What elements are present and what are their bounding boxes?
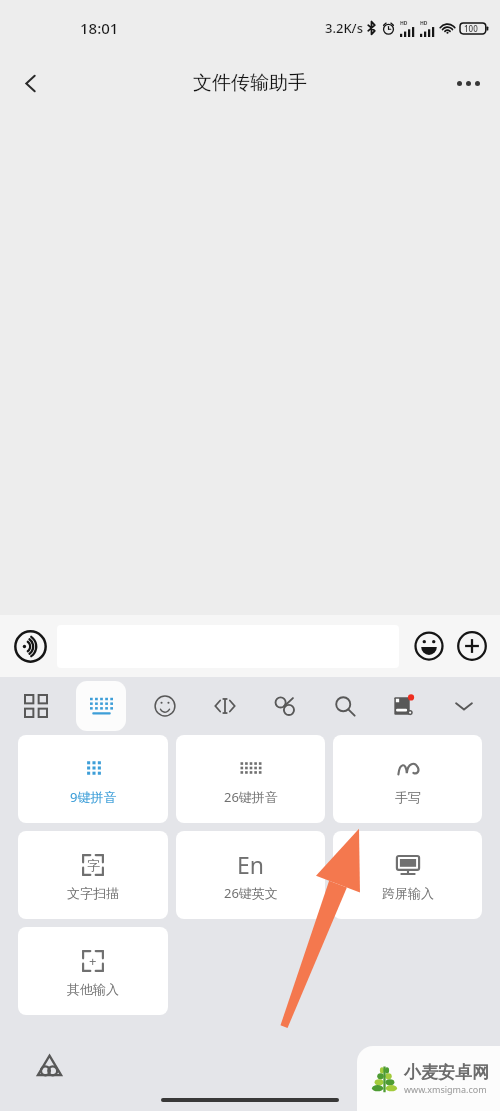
staticText: 26键英文 (224, 884, 278, 902)
staticText: 跨屏输入 (382, 885, 434, 901)
button[interactable]: En (176, 831, 325, 919)
button[interactable]: Clipboard (384, 686, 424, 726)
staticText: 文字扫描 (67, 885, 119, 901)
button[interactable]: Hide keyboard (444, 686, 484, 726)
button[interactable]: 9键拼音 (18, 735, 168, 823)
button[interactable]: + (18, 927, 168, 1015)
button[interactable]: Tools (16, 686, 56, 726)
button[interactable]: 字 (18, 831, 168, 919)
button[interactable]: Emoji (145, 686, 185, 726)
button[interactable]: Keyboard (76, 681, 126, 731)
staticText: 3.2K/s (325, 19, 363, 37)
staticText: 文件传输助手 (193, 71, 307, 95)
staticText: 26键拼音 (224, 788, 278, 806)
staticText: HD (400, 20, 408, 27)
button[interactable]: More options (444, 59, 492, 107)
button[interactable]: More functions (453, 627, 491, 665)
staticText: 9键拼音 (70, 788, 117, 806)
button[interactable]: 26键拼音 (176, 735, 325, 823)
button[interactable]: Emoji (410, 627, 448, 665)
button[interactable]: Link (265, 686, 305, 726)
staticText: 手写 (395, 789, 421, 805)
staticText: HD (420, 20, 428, 27)
button[interactable]: Text editing (205, 686, 245, 726)
button[interactable]: Back (6, 59, 54, 107)
staticText: + (89, 952, 97, 970)
staticText: www.xmsigma.com (404, 1083, 487, 1095)
staticText: 其他输入 (67, 981, 119, 997)
button[interactable]: Search (325, 686, 365, 726)
button[interactable]: 手写 (333, 735, 482, 823)
staticText: 18:01 (80, 18, 119, 38)
staticText: En (237, 849, 265, 879)
button[interactable]: Input method settings (32, 1049, 66, 1083)
staticText: 100 (464, 23, 478, 34)
button[interactable]: Voice input (9, 625, 51, 667)
staticText: 字 (87, 857, 100, 873)
button[interactable]: 跨屏输入 (333, 831, 482, 919)
staticText: 小麦安卓网 (404, 1062, 489, 1083)
